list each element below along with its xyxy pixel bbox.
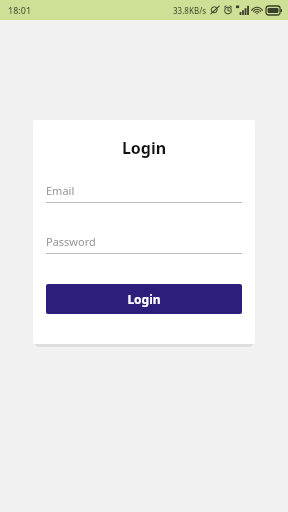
button[interactable]: Email (46, 180, 242, 203)
button[interactable]: Login (46, 284, 242, 314)
staticText: Email (46, 183, 75, 198)
staticText: Login (127, 291, 161, 307)
button[interactable]: Password (46, 231, 242, 254)
staticText: Password (46, 234, 96, 249)
staticText: Login (33, 137, 255, 159)
staticText: 18:01 (8, 4, 32, 16)
staticText: 33.8KB/s (173, 5, 207, 16)
